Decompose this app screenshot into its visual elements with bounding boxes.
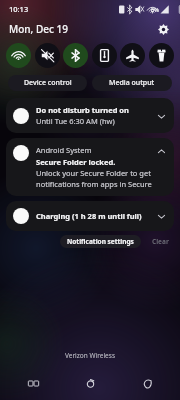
button[interactable]: Back	[138, 374, 156, 392]
staticText: 10:13	[9, 4, 29, 14]
staticText: Notification settings	[67, 237, 134, 246]
button[interactable]: Do not disturb turned on	[6, 98, 174, 133]
button[interactable]: Expand	[155, 210, 167, 222]
button[interactable]: Clear	[149, 235, 172, 248]
button[interactable]: Charging (1 h 28 m until full)	[6, 201, 174, 231]
staticText: Unlock your Secure Folder to get	[36, 168, 151, 178]
staticText: Secure Folder locked.	[36, 157, 116, 167]
button[interactable]: Media output	[92, 75, 172, 91]
button[interactable]: Bluetooth	[63, 43, 88, 68]
button[interactable]: Flashlight	[149, 43, 174, 68]
button[interactable]: Airplane mode	[120, 43, 145, 68]
staticText: Android System	[36, 145, 92, 155]
button[interactable]: Sound off	[35, 43, 60, 68]
staticText: Until Tue 6:30 AM (hw)	[36, 116, 115, 126]
button[interactable]: Notification settings	[60, 235, 141, 248]
button[interactable]: Device control	[8, 75, 87, 91]
staticText: Verizon Wireless	[0, 351, 180, 360]
button[interactable]: Device	[92, 43, 117, 68]
button[interactable]: Home	[81, 374, 99, 392]
button[interactable]: Recents	[24, 374, 42, 392]
staticText: Clear	[152, 237, 169, 246]
button[interactable]: Expand	[155, 110, 167, 122]
staticText: Media output	[109, 78, 155, 88]
staticText: Do not disturb turned on	[36, 105, 129, 115]
staticText: notifications from apps in Secure Folder…	[36, 179, 155, 189]
staticText: 6%	[151, 6, 159, 13]
button[interactable]: Wi-Fi	[6, 43, 31, 68]
staticText: Charging (1 h 28 m until full)	[36, 211, 155, 221]
button[interactable]: Collapse	[155, 145, 167, 157]
staticText: Mon, Dec 19	[9, 22, 68, 36]
button[interactable]: Android System	[6, 138, 174, 196]
button[interactable]: Settings	[154, 20, 172, 38]
staticText: Device control	[24, 78, 72, 88]
